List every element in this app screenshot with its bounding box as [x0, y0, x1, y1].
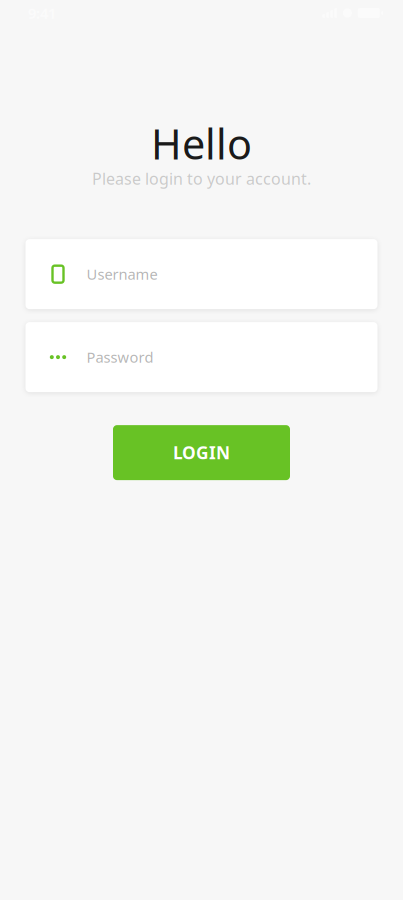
staticText: Hello	[151, 116, 252, 171]
button[interactable]: Username	[25, 239, 377, 309]
staticText: Please login to your account.	[92, 168, 311, 189]
button[interactable]: Password	[25, 322, 377, 392]
staticText: Password	[86, 347, 153, 367]
staticText: Username	[86, 264, 157, 284]
button[interactable]: LOGIN	[113, 425, 290, 480]
staticText: LOGIN	[173, 441, 230, 464]
